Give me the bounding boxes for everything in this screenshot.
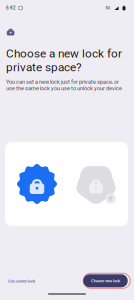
staticText: Use screen lock <box>8 278 35 283</box>
staticText: You can set a new lock just for private … <box>6 78 122 92</box>
button[interactable]: Use screen lock <box>5 274 38 288</box>
staticText: 6:42 <box>6 5 16 11</box>
staticText: Choose a new lock for private space? <box>6 46 122 74</box>
staticText: 5G <box>105 6 110 10</box>
staticText: Choose new lock <box>91 278 120 283</box>
button[interactable]: Choose new lock <box>79 272 131 290</box>
